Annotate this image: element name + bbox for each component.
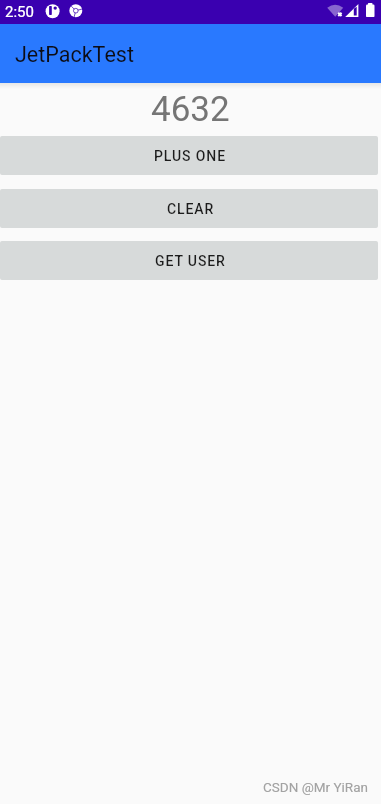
button[interactable]: GET USER [0,241,378,280]
staticText: PLUS ONE [154,148,227,164]
staticText: CLEAR [167,201,215,217]
staticText: 4632 [151,89,230,130]
button[interactable]: PLUS ONE [0,136,378,175]
other: Wi-Fi off, signal, battery [0,0,381,24]
button[interactable]: CLEAR [0,189,378,228]
staticText: GET USER [155,253,226,269]
staticText: CSDN @Mr YiRan [263,779,368,795]
staticText: 2:50 [5,3,34,21]
other: Notifications [0,0,381,24]
staticText: JetPackTest [15,42,134,67]
